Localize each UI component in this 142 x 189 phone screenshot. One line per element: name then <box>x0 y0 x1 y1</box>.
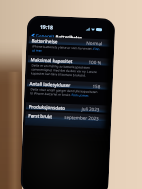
button[interactable]: Produksjonsdato <box>26 102 111 113</box>
button[interactable]: Først brukt <box>25 111 110 122</box>
button[interactable]: Back <box>32 32 55 39</box>
staticText: Dette er en måling av batterikapasiteten… <box>31 63 101 78</box>
other: Back <box>32 33 35 37</box>
staticText: Først brukt <box>28 112 52 119</box>
staticText: Produksjonsdato <box>29 103 66 111</box>
staticText: Generelt <box>36 33 55 39</box>
staticText: 19:18 <box>40 24 53 30</box>
staticText: Normal <box>86 40 102 46</box>
staticText: Batterihelse <box>31 37 59 44</box>
staticText: Dette viser antall ganger den fulle kapa… <box>30 87 100 98</box>
button[interactable]: Batterihelse <box>28 36 114 47</box>
staticText: 100 % <box>88 59 102 65</box>
button[interactable]: Maksimal kapasitet <box>28 55 113 66</box>
staticText: Batterihelse <box>55 33 83 40</box>
staticText: 158 <box>92 83 101 89</box>
button[interactable]: Antall ladesykluser <box>27 79 112 90</box>
staticText: september 2023 <box>64 114 99 121</box>
staticText: Maksimal kapasitet <box>31 56 73 64</box>
staticText: Antall ladesykluser <box>30 80 71 88</box>
staticText: iPhone-batteriets ytelse er som forvente… <box>32 44 102 55</box>
staticText: juli 2023 <box>81 105 100 112</box>
